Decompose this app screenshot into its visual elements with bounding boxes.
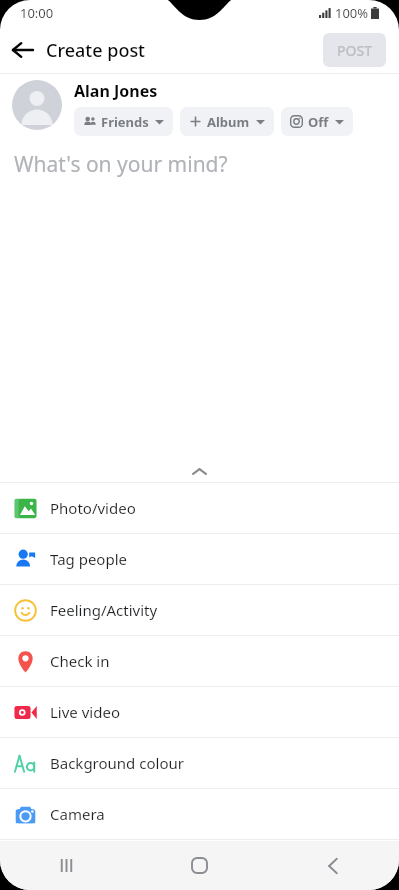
staticText: GIF [50,855,74,875]
button[interactable]: Camera [0,789,399,839]
staticText: Check in [50,651,110,671]
button[interactable]: Album [180,107,274,136]
button[interactable]: Collapse [0,460,399,482]
button[interactable]: Tag people [0,534,399,584]
button[interactable]: Off [281,107,353,136]
staticText: POST [337,41,373,60]
staticText: Create post [46,38,146,63]
staticText: Album [207,113,250,131]
button[interactable]: Back [0,27,46,73]
staticText: Background colour [50,753,184,773]
staticText: What's on your mind? [14,150,228,179]
button[interactable]: GIF [0,840,399,890]
button[interactable]: Home [133,841,266,890]
staticText: Live video [50,702,120,722]
button[interactable]: Friends [74,107,173,136]
button[interactable]: Back [266,841,399,890]
staticText: Photo/video [50,498,136,518]
button[interactable]: Background colour [0,738,399,788]
button[interactable]: Recents [0,841,133,890]
staticText: Friends [101,113,149,131]
staticText: 100% [335,4,369,22]
staticText: Off [308,113,329,131]
staticText: Tag people [50,549,127,569]
staticText: Alan Jones [74,80,158,102]
button[interactable]: Photo/video [0,483,399,533]
staticText: 10:00 [20,4,54,22]
button[interactable]: POST [323,33,386,67]
button[interactable]: Feeling/Activity [0,585,399,635]
staticText: Feeling/Activity [50,600,158,620]
button[interactable]: Check in [0,636,399,686]
staticText: Camera [50,804,105,824]
button[interactable]: Live video [0,687,399,737]
